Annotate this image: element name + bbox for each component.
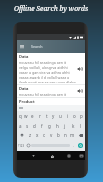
staticText: Data bbox=[19, 86, 29, 91]
staticText: n bbox=[64, 132, 67, 138]
button[interactable]: i bbox=[64, 111, 71, 121]
staticText: t bbox=[46, 113, 48, 119]
button[interactable]: s bbox=[24, 121, 31, 130]
button[interactable]: Emoji bbox=[25, 140, 31, 151]
staticText: w bbox=[24, 113, 28, 119]
button[interactable]: e bbox=[29, 111, 36, 121]
staticText: g bbox=[48, 123, 51, 129]
button[interactable]: Menu bbox=[20, 45, 24, 48]
staticText: d bbox=[33, 123, 36, 129]
staticText: a bbox=[19, 123, 22, 129]
button[interactable]: ?123 bbox=[17, 140, 25, 151]
button[interactable]: l bbox=[77, 121, 85, 130]
staticText: m bbox=[70, 132, 75, 138]
staticText: . bbox=[73, 143, 74, 148]
staticText: nouveau hil seaaiinga aen it velgu bbox=[19, 92, 76, 96]
button[interactable]: Search bbox=[76, 140, 85, 151]
staticText: k bbox=[72, 123, 75, 129]
staticText: j bbox=[64, 123, 66, 129]
button[interactable]: Data bbox=[17, 53, 85, 84]
button[interactable]: g bbox=[45, 121, 53, 130]
staticText: u bbox=[59, 113, 62, 119]
button[interactable]: v bbox=[48, 130, 55, 140]
button[interactable]: Speak bbox=[77, 88, 83, 94]
button[interactable]: Hide keyboard bbox=[30, 153, 36, 159]
button[interactable]: q bbox=[17, 111, 23, 121]
staticText: y bbox=[52, 113, 55, 119]
staticText: Data bbox=[19, 54, 29, 59]
button[interactable]: n bbox=[62, 130, 69, 140]
button[interactable]: o bbox=[71, 111, 78, 121]
button[interactable]: Switch keyboard bbox=[78, 153, 84, 159]
button[interactable]: w bbox=[23, 111, 29, 121]
button[interactable]: h bbox=[53, 121, 61, 130]
staticText: e bbox=[31, 113, 34, 119]
button[interactable]: m bbox=[69, 130, 76, 140]
staticText: Search bbox=[31, 44, 43, 49]
staticText: nouveau hil seaaiinga aen it velgu voill… bbox=[19, 60, 76, 83]
button[interactable]: Speak bbox=[77, 66, 83, 72]
staticText: Product bbox=[19, 99, 35, 104]
staticText: q bbox=[19, 113, 22, 119]
staticText: x bbox=[36, 132, 39, 138]
button[interactable]: k bbox=[69, 121, 77, 130]
staticText: r bbox=[39, 113, 41, 119]
staticText: ?123 bbox=[18, 144, 25, 148]
staticText: s bbox=[26, 123, 29, 129]
button[interactable]: u bbox=[57, 111, 64, 121]
staticText: f bbox=[41, 123, 43, 129]
button[interactable]: d bbox=[31, 121, 38, 130]
button[interactable]: y bbox=[50, 111, 57, 121]
button[interactable]: Home bbox=[49, 153, 55, 159]
button[interactable]: f bbox=[38, 121, 45, 130]
button[interactable]: z bbox=[27, 130, 34, 140]
button[interactable]: p bbox=[78, 111, 85, 121]
button[interactable]: Data bbox=[17, 85, 85, 97]
staticText: v bbox=[50, 132, 53, 138]
button[interactable]: t bbox=[43, 111, 50, 121]
button[interactable]: Recents bbox=[66, 153, 72, 159]
button[interactable]: x bbox=[34, 130, 41, 140]
button[interactable]: c bbox=[41, 130, 48, 140]
button[interactable]: Space bbox=[31, 140, 70, 151]
button[interactable]: Shift bbox=[17, 130, 27, 140]
button[interactable]: b bbox=[55, 130, 62, 140]
staticText: i bbox=[67, 113, 69, 119]
staticText: l bbox=[80, 123, 82, 129]
button[interactable]: Backspace bbox=[76, 130, 85, 140]
button[interactable]: r bbox=[36, 111, 43, 121]
staticText: b bbox=[57, 132, 60, 138]
staticText: h bbox=[56, 123, 59, 129]
staticText: z bbox=[29, 132, 32, 138]
staticText: o bbox=[73, 113, 76, 119]
button[interactable]: j bbox=[61, 121, 69, 130]
staticText: Offline Search by words bbox=[14, 4, 89, 13]
button[interactable]: a bbox=[17, 121, 24, 130]
staticText: c bbox=[43, 132, 46, 138]
staticText: p bbox=[80, 113, 83, 119]
